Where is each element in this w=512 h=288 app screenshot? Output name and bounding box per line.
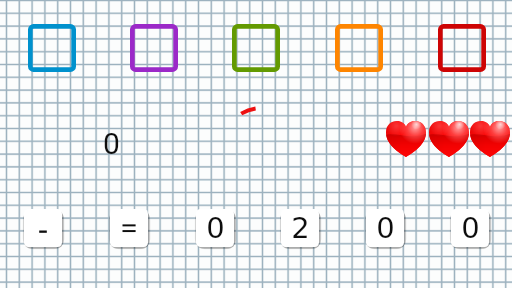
button[interactable]: Colour square 3	[232, 24, 280, 72]
other: Life 2	[429, 120, 469, 157]
button[interactable]: 0	[192, 205, 238, 251]
staticText: 0	[206, 211, 225, 245]
button[interactable]: Colour square 4	[335, 24, 383, 72]
button[interactable]: Colour square 5	[438, 24, 486, 72]
button[interactable]: 0	[447, 205, 493, 251]
button[interactable]: 2	[277, 205, 323, 251]
button[interactable]	[20, 205, 66, 251]
staticText: 0	[461, 211, 480, 245]
other: Marker stroke	[236, 100, 262, 120]
button[interactable]	[106, 205, 152, 251]
staticText: 0	[376, 211, 395, 245]
staticText: 0	[103, 126, 120, 161]
button[interactable]: Colour square 2	[130, 24, 178, 72]
button[interactable]: 0	[362, 205, 408, 251]
button[interactable]: Colour square 1	[28, 24, 76, 72]
other: Life 3	[470, 120, 510, 157]
staticText: 2	[291, 211, 310, 245]
other: Life 1	[386, 120, 426, 157]
